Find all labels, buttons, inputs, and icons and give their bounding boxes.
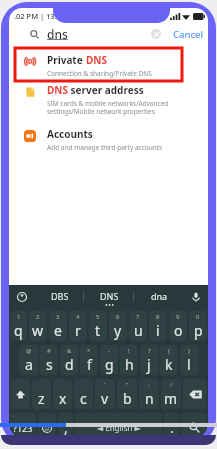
staticText: 7 [136,313,140,321]
staticText: ( [168,347,170,355]
staticText: ? [148,347,151,355]
button[interactable]: Emoji [38,413,56,436]
staticText: - [108,347,110,355]
button[interactable]: 5 [89,311,107,341]
button[interactable]: ? [140,345,158,375]
staticText: @ [26,347,32,355]
staticText: ) [188,347,190,355]
staticText: v [101,389,109,408]
button[interactable]: 2 [29,311,47,341]
button[interactable]: , [58,413,73,436]
staticText: Add and manage third party accounts [47,143,163,152]
other: Search [189,422,200,433]
button[interactable]: x [53,379,72,409]
button[interactable]: - [100,345,118,375]
button[interactable]: Shift [10,379,30,409]
staticText: m [164,389,178,408]
button[interactable]: ! [120,345,138,375]
button[interactable]: ◄ English ► [75,413,162,436]
button[interactable]: Cancel [173,28,204,41]
button[interactable]: Clipboard [9,285,35,309]
button[interactable]: Accounts [9,120,208,158]
button[interactable]: : [139,379,159,409]
button[interactable]: z [32,379,51,409]
staticText: y [114,321,122,340]
button[interactable]: . [164,413,179,436]
button[interactable]: DNS [84,285,134,309]
staticText: 0 [196,313,200,321]
staticText: , [64,418,68,436]
staticText: SIM cards & mobile networks/Advanced set… [47,99,169,116]
staticText: e [54,321,62,340]
button[interactable]: / [161,379,181,409]
button[interactable]: Voice input [184,285,208,309]
staticText: dns [47,26,68,42]
staticText: # [47,347,51,355]
button[interactable]: & [60,345,78,375]
staticText: f [87,355,92,374]
other: Shift [15,389,26,400]
staticText: DNS [86,53,107,67]
staticText: 4 [76,313,80,321]
staticText: & [67,347,72,355]
button[interactable]: " [117,379,137,409]
button[interactable]: Clear text [151,29,161,39]
staticText: 5 [96,313,100,321]
staticText: ?123 [13,422,33,434]
button[interactable]: Search [181,413,207,436]
button[interactable]: 1 [10,311,27,341]
staticText: u [134,321,143,340]
button[interactable]: @ [19,345,38,375]
staticText: DNS [47,83,68,97]
button[interactable]: Private [9,46,208,84]
button[interactable]: 4 [69,311,87,341]
staticText: 6 [116,313,120,321]
staticText: DNS [100,290,119,302]
staticText: t [95,321,101,340]
staticText: .02 PM | 13. [14,11,57,21]
button[interactable]: ) [180,345,198,375]
staticText: server address [68,83,144,97]
button[interactable]: 7 [129,311,147,341]
staticText: s [46,355,53,374]
staticText: r [75,321,81,340]
button[interactable]: 6 [109,311,127,341]
button[interactable]: Search [9,22,208,46]
button[interactable]: ' [95,379,115,409]
button[interactable]: Backspace [183,379,207,409]
button[interactable]: 8 [149,311,167,341]
button[interactable]: # [40,345,58,375]
staticText: d [65,355,74,374]
staticText: g [105,355,114,374]
staticText: / [170,381,173,389]
button[interactable]: c [74,379,93,409]
button[interactable]: dna [134,285,184,309]
button[interactable]: 3 [49,311,67,341]
staticText: ◄ English ► [97,422,141,433]
other: Backspace [189,390,202,399]
staticText: k [165,355,173,374]
staticText: Connection & sharing/Private DNS [47,69,152,78]
staticText: l [187,355,191,374]
staticText: ! [128,347,130,355]
staticText: n [145,389,154,408]
staticText: a [25,355,33,374]
button[interactable]: * [80,345,98,375]
button[interactable]: 0 [189,311,207,341]
other: Emoji [42,423,52,433]
staticText: x [59,389,67,408]
button[interactable]: ?123 [10,413,36,436]
button[interactable]: DNS [9,76,208,122]
staticText: 3 [56,313,60,321]
button[interactable]: ( [160,345,178,375]
staticText: o [174,321,183,340]
staticText: h [125,355,134,374]
staticText: 1 [17,313,21,321]
staticText: p [194,321,203,340]
staticText: dna [151,290,168,302]
button[interactable]: DBS [35,285,84,309]
staticText: w [32,321,44,340]
other: Search [30,30,39,39]
button[interactable]: 9 [169,311,187,341]
staticText: : [148,381,150,389]
